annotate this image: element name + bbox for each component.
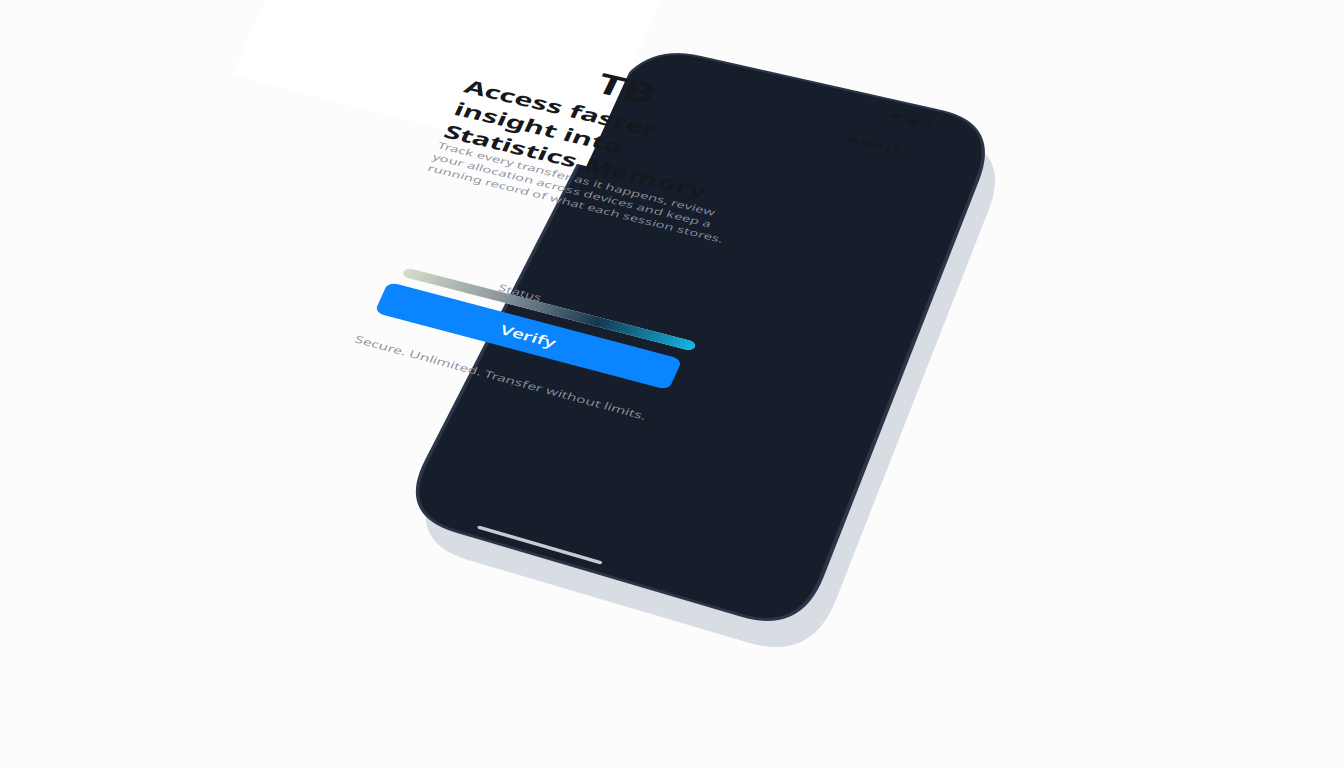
staticText: Status [502,281,550,299]
staticText: TB [607,64,673,110]
staticText: Verify [519,294,579,323]
staticText: Access faster insight into Statistics Me… [471,74,770,146]
staticText: Secure. Unlimited. Transfer without limi… [358,332,674,354]
button[interactable]: Verify [388,282,710,336]
staticText: Assets [852,129,911,149]
button[interactable]: Assets [841,129,911,149]
staticText: Track every transfer as it happens, revi… [441,139,773,203]
